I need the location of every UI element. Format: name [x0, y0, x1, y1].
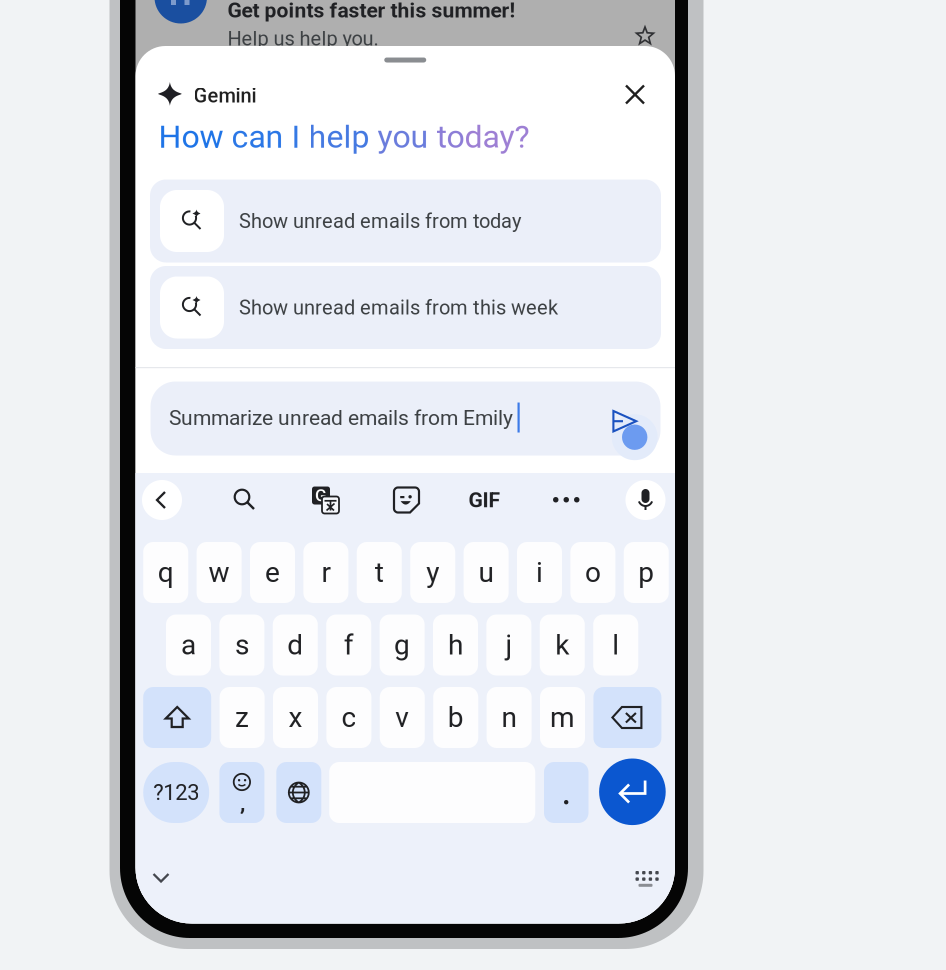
button[interactable]: n — [487, 687, 532, 748]
button[interactable]: p — [624, 542, 669, 603]
button[interactable]: Voice input — [625, 480, 665, 520]
button[interactable]: c — [326, 687, 371, 748]
staticText: to — [436, 118, 464, 155]
staticText: help — [308, 118, 377, 155]
staticText: you — [377, 118, 436, 155]
button[interactable]: w — [197, 542, 242, 603]
button[interactable]: Period — [544, 762, 588, 823]
staticText: f — [344, 629, 354, 661]
staticText: h — [448, 629, 463, 661]
staticText: I — [291, 118, 308, 155]
staticText: q — [158, 556, 174, 589]
staticText: c — [341, 701, 356, 734]
button[interactable]: o — [570, 542, 615, 603]
button[interactable]: Stickers — [386, 480, 426, 520]
staticText: day? — [464, 118, 529, 155]
staticText: w — [209, 556, 230, 589]
button[interactable]: Search — [225, 480, 265, 520]
button[interactable]: Back — [142, 480, 182, 520]
button[interactable]: Emoji — [219, 762, 264, 823]
staticText: Get points faster this summer! — [227, 0, 515, 23]
staticText: i — [536, 556, 543, 589]
staticText: u — [479, 556, 494, 589]
staticText: Gemini — [193, 84, 256, 107]
staticText: e — [265, 556, 280, 589]
staticText: can — [231, 118, 291, 155]
button[interactable]: Switch language — [276, 762, 321, 823]
staticText: b — [448, 701, 464, 734]
button[interactable]: Numbers and symbols — [143, 762, 209, 823]
staticText: p — [638, 556, 654, 589]
staticText: s — [235, 629, 249, 661]
button[interactable]: q — [143, 542, 188, 603]
staticText: o — [585, 556, 601, 589]
staticText: Show unread emails from this week — [239, 296, 558, 319]
button[interactable]: y — [410, 542, 455, 603]
button[interactable]: i — [517, 542, 562, 603]
staticText: a — [181, 629, 196, 661]
button[interactable]: k — [540, 614, 585, 675]
button[interactable]: h — [433, 614, 478, 675]
button[interactable]: v — [380, 687, 425, 748]
button[interactable]: j — [486, 614, 531, 675]
staticText: m — [550, 701, 575, 734]
staticText: l — [612, 629, 619, 661]
staticText: d — [287, 629, 303, 661]
button[interactable]: e — [250, 542, 295, 603]
button[interactable]: z — [220, 687, 265, 748]
button[interactable]: g — [380, 614, 425, 675]
button[interactable]: Translate — [305, 480, 345, 520]
button[interactable]: r — [303, 542, 348, 603]
staticText: y — [426, 556, 439, 589]
staticText: Help us help you. — [227, 27, 378, 50]
button[interactable]: m — [540, 687, 585, 748]
button[interactable]: Enter — [599, 758, 666, 825]
staticText: x — [288, 701, 302, 734]
button[interactable]: x — [273, 687, 318, 748]
button[interactable]: More — [546, 480, 586, 520]
button[interactable]: b — [433, 687, 478, 748]
button[interactable]: a — [166, 614, 211, 675]
button[interactable]: Show unread emails from this week — [150, 266, 661, 349]
staticText: Summarize unread emails from Emily — [169, 405, 513, 430]
button[interactable]: Show unread emails from today — [150, 179, 661, 262]
button[interactable]: t — [357, 542, 402, 603]
staticText: Show unread emails from today — [239, 209, 521, 233]
button[interactable]: Shift — [143, 687, 211, 748]
staticText: g — [394, 629, 410, 661]
staticText: , — [240, 790, 245, 816]
staticText: t — [375, 556, 384, 589]
button[interactable]: Close — [614, 73, 656, 115]
staticText: G — [315, 485, 327, 505]
staticText: GIF — [468, 488, 500, 512]
button[interactable]: d — [273, 614, 318, 675]
button[interactable]: l — [593, 614, 638, 675]
staticText: n — [502, 701, 517, 734]
staticText: v — [395, 701, 409, 734]
button[interactable]: GIF — [459, 480, 509, 520]
staticText: ?123 — [153, 780, 199, 805]
button[interactable]: s — [219, 614, 264, 675]
button[interactable]: Backspace — [593, 687, 661, 748]
staticText: How — [158, 118, 231, 155]
staticText: k — [555, 629, 569, 661]
button[interactable]: f — [326, 614, 371, 675]
staticText: z — [235, 701, 249, 734]
button[interactable]: Hide keyboard — [140, 863, 184, 895]
button[interactable]: u — [464, 542, 509, 603]
staticText: j — [505, 629, 512, 661]
staticText: r — [321, 556, 330, 589]
button[interactable]: Change keyboard — [623, 863, 667, 895]
